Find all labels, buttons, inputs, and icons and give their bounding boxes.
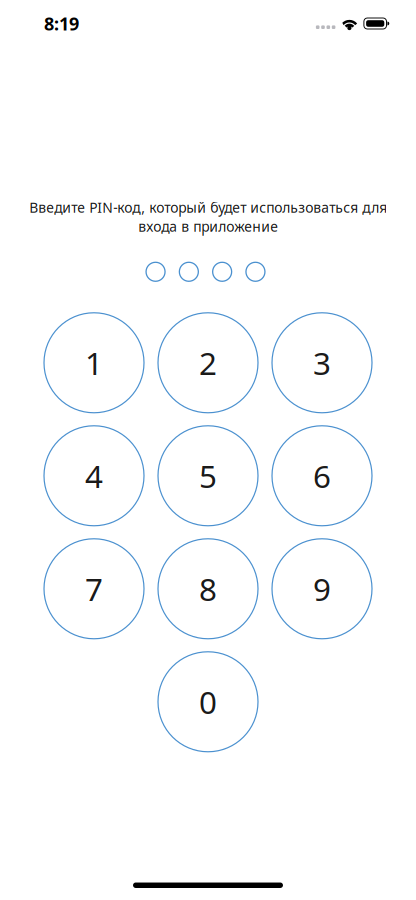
button[interactable]: 0 xyxy=(158,652,258,752)
staticText: 5 xyxy=(199,454,217,497)
button[interactable]: 9 xyxy=(272,539,372,639)
staticText: 8 xyxy=(199,567,217,610)
staticText: 6 xyxy=(313,454,331,497)
button[interactable]: 4 xyxy=(44,426,144,526)
staticText: 0 xyxy=(199,680,217,723)
staticText: 8:19 xyxy=(44,11,79,36)
staticText: 4 xyxy=(85,454,103,497)
button[interactable]: 1 xyxy=(44,313,144,413)
staticText: 3 xyxy=(313,341,331,384)
staticText: 9 xyxy=(313,567,331,610)
button[interactable]: 8 xyxy=(158,539,258,639)
button[interactable]: 6 xyxy=(272,426,372,526)
button[interactable]: 2 xyxy=(158,313,258,413)
button[interactable]: 7 xyxy=(44,539,144,639)
staticText: Введите PIN-код, который будет использов… xyxy=(29,198,387,236)
staticText: 7 xyxy=(85,567,103,610)
staticText: 1 xyxy=(85,341,103,384)
button[interactable]: 5 xyxy=(158,426,258,526)
staticText: 2 xyxy=(199,341,217,384)
button[interactable]: 3 xyxy=(272,313,372,413)
